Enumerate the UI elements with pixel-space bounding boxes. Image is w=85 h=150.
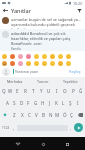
button[interactable]: . xyxy=(68,123,74,132)
staticText: D xyxy=(20,100,24,106)
button[interactable]: A xyxy=(4,97,11,109)
button[interactable]: Emoji xyxy=(41,60,47,66)
staticText: J xyxy=(49,100,51,106)
button[interactable]: R xyxy=(21,85,29,97)
button[interactable]: H xyxy=(39,97,46,109)
button[interactable]: , xyxy=(11,123,17,132)
staticText: adasdddd Bonahsoil ve çok sık xyxy=(11,31,66,36)
button[interactable]: J xyxy=(46,97,53,109)
staticText: N xyxy=(49,112,53,118)
button[interactable]: Emoji xyxy=(17,53,23,59)
button[interactable]: Back xyxy=(12,138,24,150)
button[interactable]: Send xyxy=(74,123,83,132)
button[interactable]: Emoji xyxy=(65,60,71,66)
button[interactable]: G xyxy=(32,97,39,109)
button[interactable]: X xyxy=(18,109,26,121)
button[interactable]: Ö xyxy=(61,109,68,121)
staticText: W xyxy=(8,88,13,94)
button[interactable]: Ğ xyxy=(77,85,85,97)
staticText: P xyxy=(72,88,75,94)
staticText: I xyxy=(77,100,79,106)
button[interactable]: T xyxy=(29,85,37,97)
staticText: H xyxy=(41,100,45,106)
staticText: Ş xyxy=(69,100,72,106)
button[interactable]: Shift xyxy=(0,109,10,121)
button[interactable]: O xyxy=(61,85,69,97)
button[interactable]: D xyxy=(18,97,25,109)
button[interactable]: Home xyxy=(37,138,49,150)
staticText: L xyxy=(62,100,65,106)
button[interactable]: Y xyxy=(37,85,45,97)
button[interactable]: Back xyxy=(0,6,11,15)
button[interactable]: Recent apps xyxy=(61,138,73,150)
button[interactable]: Teşekkür xyxy=(57,77,85,85)
button[interactable]: Emoji xyxy=(9,53,15,59)
staticText: S xyxy=(13,100,16,106)
button[interactable]: L xyxy=(60,97,67,109)
staticText: Ö xyxy=(63,112,67,118)
button[interactable]: V xyxy=(33,109,40,121)
staticText: . xyxy=(70,125,72,131)
button[interactable]: Emoji xyxy=(49,53,55,59)
button[interactable]: Emoji xyxy=(17,60,23,66)
staticText: I xyxy=(56,88,58,94)
staticText: uyarısında bulundu şiddetli geçecek xyxy=(11,22,75,27)
staticText: Yanıtınızı yazın xyxy=(15,69,39,74)
button[interactable]: Emoji xyxy=(57,53,63,59)
button[interactable]: Emoji xyxy=(1,53,7,59)
staticText: X xyxy=(21,112,24,118)
staticText: K xyxy=(55,100,58,106)
staticText: T xyxy=(32,88,35,94)
button[interactable]: Paylaş xyxy=(67,67,83,76)
button[interactable]: Merhaba xyxy=(0,77,29,85)
button[interactable]: Emoji xyxy=(9,60,15,66)
staticText: Teşekkür xyxy=(63,79,79,84)
button[interactable]: B xyxy=(40,109,47,121)
button[interactable]: Backspace xyxy=(75,109,85,121)
button[interactable]: N xyxy=(47,109,54,121)
button[interactable]: Z xyxy=(10,109,18,121)
staticText: Ç xyxy=(70,112,73,118)
button[interactable]: Emoji xyxy=(33,60,39,66)
button[interactable]: Emoji xyxy=(25,60,31,66)
button[interactable]: ?123 xyxy=(1,123,11,132)
staticText: Yanıtlar xyxy=(11,7,32,14)
staticText: uzmanlar bugün de sel ve sağanak yağış xyxy=(11,17,83,22)
staticText: Z xyxy=(13,112,16,118)
staticText: Ğ xyxy=(79,88,83,94)
staticText: Yanıtla xyxy=(11,47,21,51)
button[interactable]: Tuncer xyxy=(29,77,57,85)
button[interactable]: Emoji xyxy=(65,53,71,59)
button[interactable]: I xyxy=(53,85,61,97)
button[interactable]: Sparkle settings xyxy=(73,6,85,15)
staticText: G xyxy=(34,100,38,106)
button[interactable]: Emoji xyxy=(1,60,7,66)
button[interactable]: W xyxy=(7,85,14,97)
button[interactable]: Emoji xyxy=(33,53,39,59)
button[interactable]: F xyxy=(25,97,32,109)
button[interactable]: I xyxy=(74,97,81,109)
button[interactable]: K xyxy=(53,97,60,109)
button[interactable]: C xyxy=(26,109,33,121)
staticText: hazırlıklar, etkinlik ve yapılan çalış xyxy=(11,36,71,41)
staticText: Yanıtla xyxy=(17,28,27,29)
button[interactable]: Emoji xyxy=(57,60,63,66)
staticText: U xyxy=(47,88,51,94)
staticText: ?123 xyxy=(2,125,10,130)
staticText: R xyxy=(24,88,27,94)
staticText: Paylaş xyxy=(69,69,81,74)
button[interactable]: Emoji xyxy=(25,53,31,59)
button[interactable]: Q xyxy=(0,85,7,97)
button[interactable]: M xyxy=(54,109,61,121)
button[interactable]: Emoji xyxy=(49,60,55,66)
button[interactable]: E xyxy=(14,85,21,97)
staticText: Q xyxy=(2,88,6,94)
button[interactable]: Ş xyxy=(67,97,74,109)
button[interactable]: U xyxy=(45,85,53,97)
button[interactable]: Ç xyxy=(68,109,75,121)
button[interactable]: S xyxy=(11,97,18,109)
staticText: , xyxy=(13,125,15,131)
button[interactable]: Emoji xyxy=(41,53,47,59)
button[interactable]: P xyxy=(69,85,77,97)
